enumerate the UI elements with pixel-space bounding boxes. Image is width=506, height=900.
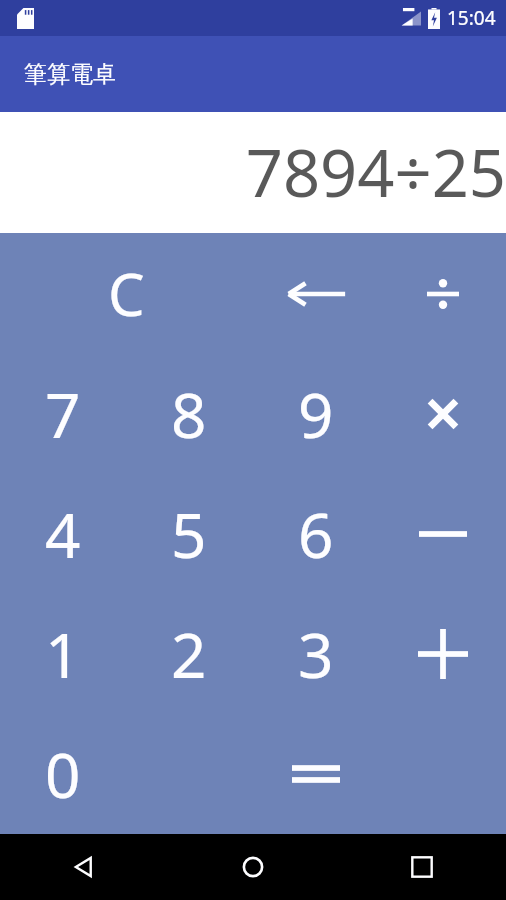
- button[interactable]: 2: [126, 594, 252, 714]
- staticText: 0: [45, 732, 81, 816]
- button[interactable]: 0: [0, 714, 126, 834]
- staticText: 7: [45, 372, 81, 456]
- button[interactable]: 3: [252, 594, 379, 714]
- staticText: 7894÷25: [245, 128, 506, 217]
- button[interactable]: C: [0, 233, 252, 354]
- staticText: 2: [171, 612, 207, 696]
- staticText: 筆算電卓: [24, 60, 116, 89]
- button[interactable]: Divide: [379, 233, 506, 354]
- staticText: 1: [45, 612, 81, 696]
- button[interactable]: Backspace: [252, 233, 379, 354]
- staticText: 5: [171, 492, 207, 576]
- button[interactable]: 7: [0, 354, 126, 474]
- staticText: 15:04: [447, 5, 496, 31]
- button[interactable]: 6: [252, 474, 379, 594]
- button[interactable]: 5: [126, 474, 252, 594]
- button[interactable]: Back: [0, 834, 168, 900]
- button[interactable]: Equals: [252, 714, 379, 834]
- button[interactable]: Minus: [379, 474, 506, 594]
- button[interactable]: 9: [252, 354, 379, 474]
- staticText: 8: [171, 372, 207, 456]
- button[interactable]: Recents: [337, 834, 506, 900]
- button[interactable]: Plus: [379, 594, 506, 714]
- staticText: C: [108, 254, 145, 333]
- button[interactable]: Home: [168, 834, 337, 900]
- staticText: 9: [298, 372, 334, 456]
- button[interactable]: 4: [0, 474, 126, 594]
- staticText: 4: [45, 492, 81, 576]
- button[interactable]: 8: [126, 354, 252, 474]
- button[interactable]: Multiply: [379, 354, 506, 474]
- staticText: 6: [298, 492, 334, 576]
- button[interactable]: 1: [0, 594, 126, 714]
- staticText: 3: [298, 612, 334, 696]
